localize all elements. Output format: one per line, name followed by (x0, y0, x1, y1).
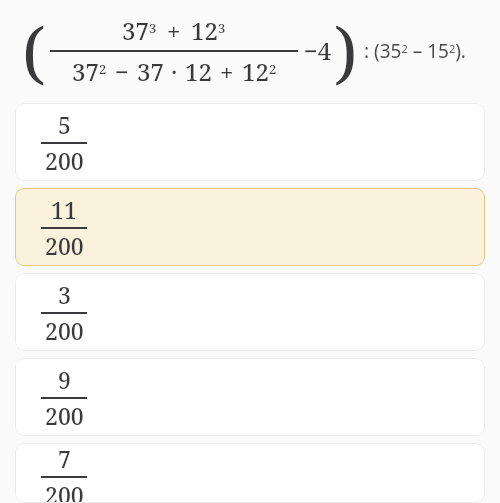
button[interactable]: 9 (15, 358, 485, 436)
staticText: − (115, 55, 129, 88)
staticText: : (352 – 152). (364, 38, 466, 64)
staticText: 200 (45, 230, 84, 261)
staticText: 373 (122, 14, 157, 47)
staticText: ) (334, 4, 358, 97)
staticText: 5 (58, 109, 71, 140)
button[interactable]: 11 (15, 188, 485, 266)
staticText: 200 (45, 479, 84, 503)
staticText: 122 (242, 55, 277, 88)
staticText: 12 (185, 55, 212, 88)
staticText: + (220, 55, 234, 88)
staticText: 123 (191, 14, 226, 47)
staticText: + (167, 14, 181, 47)
staticText: ( (22, 4, 46, 97)
staticText: 7 (58, 443, 71, 474)
staticText: 200 (45, 145, 84, 176)
button[interactable]: 7 (15, 443, 485, 503)
staticText: −4 (304, 34, 332, 67)
button[interactable]: 3 (15, 273, 485, 351)
staticText: 3 (58, 279, 71, 310)
staticText: 11 (51, 194, 77, 225)
staticText: 200 (45, 315, 84, 346)
staticText: 200 (45, 400, 84, 431)
staticText: 37 (137, 55, 164, 88)
staticText: · (171, 55, 178, 88)
button[interactable]: 5 (15, 103, 485, 181)
staticText: 372 (72, 55, 107, 88)
staticText: 9 (58, 364, 71, 395)
